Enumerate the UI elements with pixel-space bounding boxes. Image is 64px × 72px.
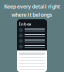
staticText: Inbox [19,21,31,26]
staticText: Keep every detail right [4,3,60,10]
staticText: where it belongs [11,11,52,18]
